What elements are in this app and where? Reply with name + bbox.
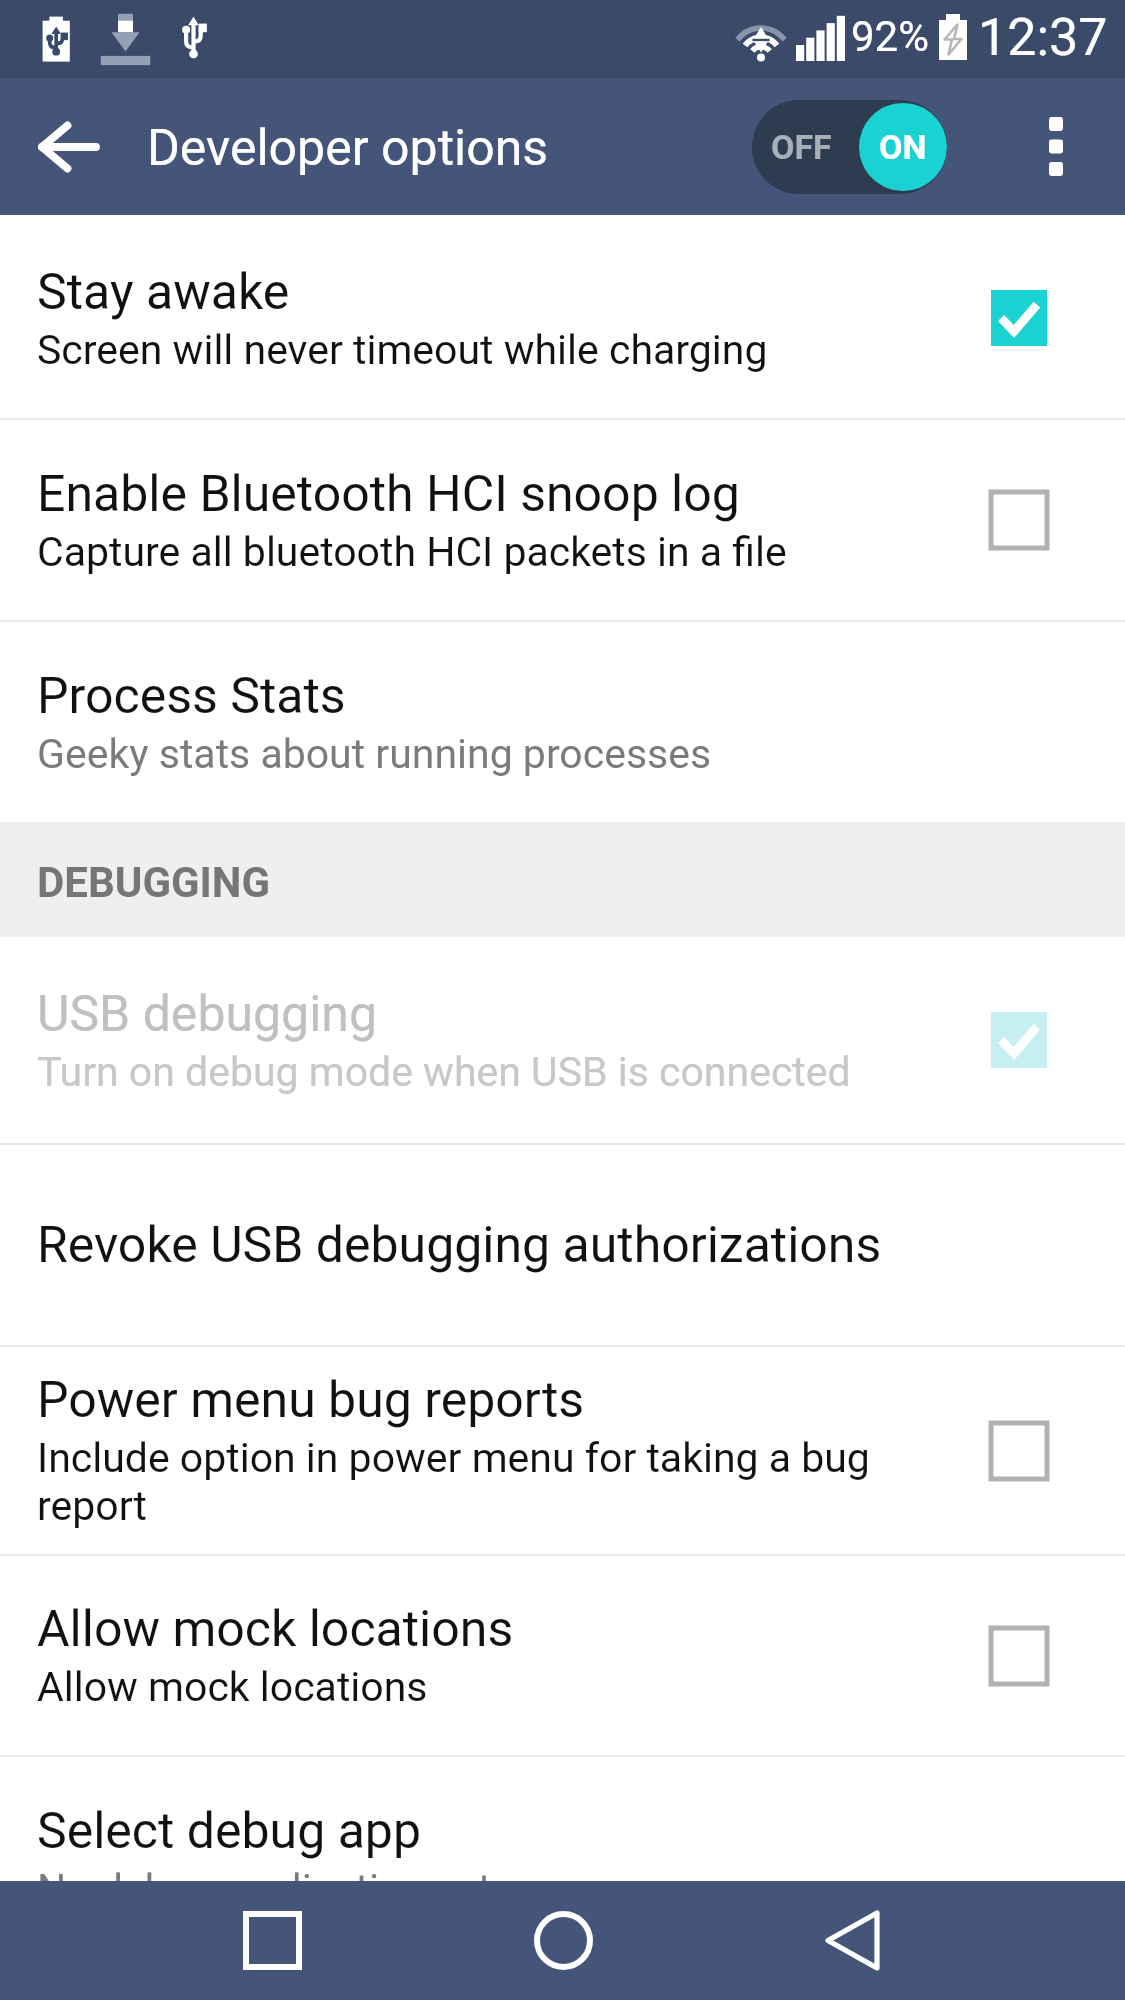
button[interactable]: Power menu bug reports	[0, 1347, 1125, 1554]
staticText: Select debug app	[37, 1802, 421, 1861]
staticText: Allow mock locations	[37, 1600, 514, 1659]
staticText: Revoke USB debugging authorizations	[37, 1216, 882, 1275]
staticText: 12:37	[978, 7, 1108, 68]
staticText: Geeky stats about running processes	[37, 730, 712, 778]
staticText: No debug application set	[37, 1865, 492, 1884]
staticText: Enable Bluetooth HCI snoop log	[37, 465, 740, 524]
staticText: Capture all bluetooth HCI packets in a f…	[37, 528, 787, 576]
staticText: Power menu bug reports	[37, 1371, 585, 1430]
button[interactable]: Navigate up	[4, 78, 134, 215]
staticText: Stay awake	[37, 263, 290, 322]
button[interactable]: Recent apps	[212, 1881, 332, 2000]
staticText: Screen will never timeout while charging	[37, 326, 768, 374]
button[interactable]: Stay awake	[0, 218, 1125, 418]
staticText: Process Stats	[37, 667, 346, 726]
button[interactable]: Select debug app	[0, 1757, 1125, 1884]
button[interactable]: Process Stats	[0, 622, 1125, 822]
staticText: Turn on debug mode when USB is connected	[37, 1048, 851, 1096]
staticText: USB debugging	[37, 985, 378, 1044]
button[interactable]: More options	[996, 78, 1116, 215]
button[interactable]: Enable Bluetooth HCI snoop log	[0, 420, 1125, 620]
button[interactable]: Back	[792, 1881, 912, 2000]
staticText: Include option in power menu for taking …	[37, 1434, 893, 1530]
staticText: DEBUGGING	[37, 858, 271, 907]
button[interactable]: Revoke USB debugging authorizations	[0, 1145, 1125, 1345]
staticText: OFF	[771, 127, 832, 167]
button[interactable]: Allow mock locations	[0, 1556, 1125, 1755]
staticText: 92%	[851, 12, 929, 61]
button[interactable]: Toggle developer options	[752, 100, 947, 194]
staticText: Developer options	[147, 119, 549, 178]
staticText: ON	[879, 127, 927, 167]
button[interactable]: Home	[503, 1881, 623, 2000]
staticText: Allow mock locations	[37, 1663, 428, 1711]
button[interactable]: USB debugging	[0, 937, 1125, 1143]
